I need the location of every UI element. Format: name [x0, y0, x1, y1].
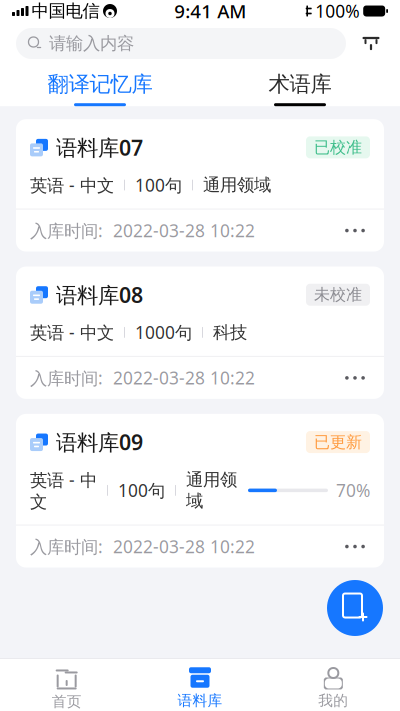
- button[interactable]: 新建语料库: [327, 580, 383, 636]
- staticText: 未校准: [314, 285, 362, 305]
- staticText: 入库时间: 2022-03-28 10:22: [30, 219, 255, 242]
- button[interactable]: 语料库07: [16, 119, 384, 251]
- staticText: 语料库07: [56, 133, 143, 161]
- button[interactable]: 更多操作: [340, 533, 370, 559]
- button[interactable]: 术语库: [200, 71, 400, 106]
- staticText: 首页: [52, 692, 82, 710]
- staticText: 100%: [315, 0, 359, 22]
- staticText: 科技: [213, 322, 247, 343]
- staticText: 入库时间: 2022-03-28 10:22: [30, 535, 255, 558]
- staticText: 语料库: [177, 691, 222, 709]
- staticText: 已校准: [314, 137, 362, 157]
- staticText: 中国电信: [31, 0, 99, 22]
- staticText: 英语 - 中文: [30, 173, 114, 196]
- staticText: 已更新: [314, 432, 362, 452]
- staticText: 请输入内容: [49, 33, 134, 54]
- staticText: 通用领域: [203, 174, 271, 196]
- button[interactable]: 请输入内容: [16, 28, 346, 59]
- button[interactable]: 更多操作: [340, 218, 370, 244]
- button[interactable]: 我的: [267, 660, 400, 709]
- staticText: 100句: [135, 173, 182, 196]
- staticText: 1000句: [135, 321, 192, 344]
- staticText: 我的: [318, 691, 348, 709]
- staticText: 通用领域: [186, 469, 237, 512]
- staticText: 术语库: [268, 71, 331, 97]
- button[interactable]: 语料库: [133, 660, 267, 709]
- staticText: 100句: [118, 479, 165, 502]
- button[interactable]: 语料库09: [16, 414, 384, 567]
- staticText: 入库时间: 2022-03-28 10:22: [30, 366, 255, 389]
- button[interactable]: 更多操作: [340, 365, 370, 391]
- staticText: 英语 - 中文: [30, 321, 114, 344]
- staticText: 英语 - 中文: [30, 468, 97, 512]
- button[interactable]: 翻译记忆库: [0, 71, 200, 106]
- staticText: 翻译记忆库: [47, 71, 152, 97]
- button[interactable]: 语料库08: [16, 267, 384, 399]
- staticText: 语料库09: [56, 428, 143, 456]
- button[interactable]: 筛选: [358, 28, 384, 59]
- button[interactable]: 首页: [0, 659, 133, 710]
- staticText: 70%: [336, 479, 370, 502]
- staticText: 语料库08: [56, 281, 143, 309]
- staticText: 9:41 AM: [174, 0, 246, 23]
